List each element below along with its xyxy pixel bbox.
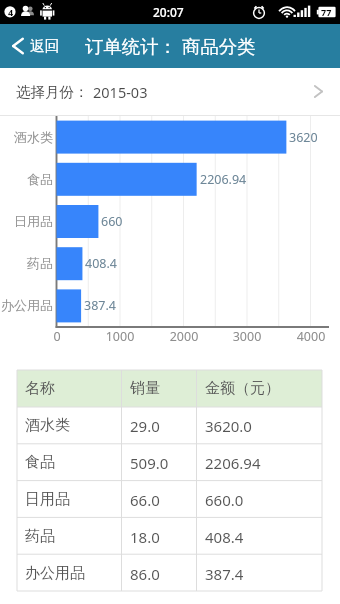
staticText: 3620.0 [205, 416, 252, 436]
staticText: 药品 [25, 527, 55, 546]
staticText: 选择月份： [16, 83, 89, 101]
staticText: 酒水类 [25, 416, 70, 435]
staticText: 4 [8, 6, 14, 18]
button[interactable]: 返回 [0, 24, 72, 68]
staticText: 86.0 [130, 564, 160, 584]
staticText: 日用品 [0, 213, 53, 229]
staticText: 387.4 [84, 297, 116, 314]
staticText: 660.0 [205, 490, 244, 510]
staticText: 408.4 [205, 527, 244, 547]
staticText: 18.0 [130, 527, 160, 547]
staticText: 返回 [30, 37, 60, 56]
staticText: 408.4 [85, 255, 117, 272]
staticText: 387.4 [205, 564, 244, 584]
staticText: 办公用品 [0, 297, 53, 313]
staticText: 2206.94 [200, 171, 247, 188]
staticText: 药品 [0, 255, 53, 271]
staticText: 2015-03 [93, 82, 148, 102]
staticText: 食品 [0, 171, 53, 187]
staticText: 2206.94 [205, 453, 261, 473]
staticText: 20:07 [153, 4, 184, 20]
staticText: 日用品 [25, 490, 70, 509]
staticText: 1000 [90, 328, 150, 345]
staticText: 2000 [154, 328, 214, 345]
staticText: 509.0 [130, 453, 169, 473]
staticText: 66.0 [130, 490, 160, 510]
staticText: 29.0 [130, 416, 160, 436]
other: Select month [314, 85, 323, 98]
staticText: 酒水类 [0, 129, 53, 145]
staticText: 660 [101, 213, 123, 230]
staticText: 3000 [217, 328, 277, 345]
staticText: 销量 [130, 379, 160, 398]
button[interactable]: 选择月份： [0, 68, 340, 115]
staticText: 4000 [281, 328, 340, 345]
staticText: 0 [27, 328, 87, 345]
staticText: 食品 [25, 453, 55, 472]
staticText: 3620 [289, 129, 318, 146]
staticText: 商品分类 [182, 35, 256, 58]
staticText: 办公用品 [25, 564, 85, 583]
staticText: 名称 [25, 379, 55, 398]
staticText: 订单统计： [85, 35, 177, 58]
staticText: 77 [321, 6, 332, 18]
staticText: 金额（元） [205, 379, 280, 398]
